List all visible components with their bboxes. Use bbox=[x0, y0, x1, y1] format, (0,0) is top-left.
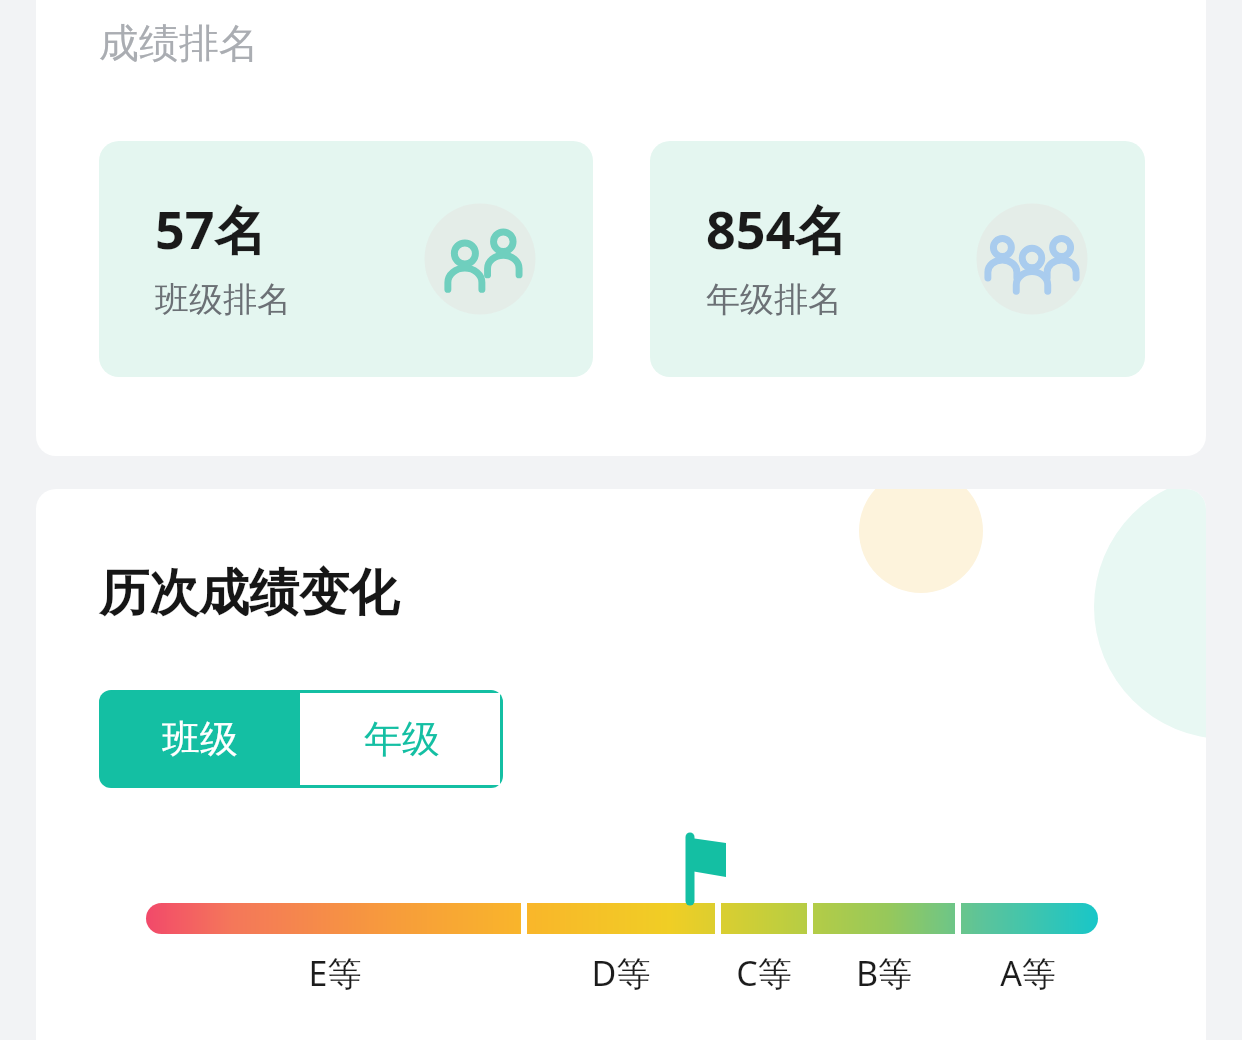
staticText: 854名 bbox=[706, 193, 848, 264]
staticText: E等 bbox=[290, 950, 380, 996]
staticText: D等 bbox=[576, 950, 666, 996]
button[interactable]: 57名 bbox=[99, 141, 593, 377]
button[interactable]: 班级 bbox=[99, 690, 300, 788]
button[interactable]: 年级 bbox=[300, 690, 503, 788]
staticText: 成绩排名 bbox=[99, 18, 259, 68]
staticText: 年级排名 bbox=[706, 278, 842, 321]
button[interactable]: 854名 bbox=[650, 141, 1145, 377]
staticText: 历次成绩变化 bbox=[99, 562, 399, 625]
staticText: A等 bbox=[983, 950, 1073, 996]
staticText: 班级 bbox=[162, 715, 238, 763]
staticText: C等 bbox=[719, 950, 809, 996]
staticText: 57名 bbox=[155, 193, 267, 264]
staticText: 年级 bbox=[364, 715, 440, 763]
staticText: B等 bbox=[839, 950, 929, 996]
staticText: 班级排名 bbox=[155, 278, 291, 321]
